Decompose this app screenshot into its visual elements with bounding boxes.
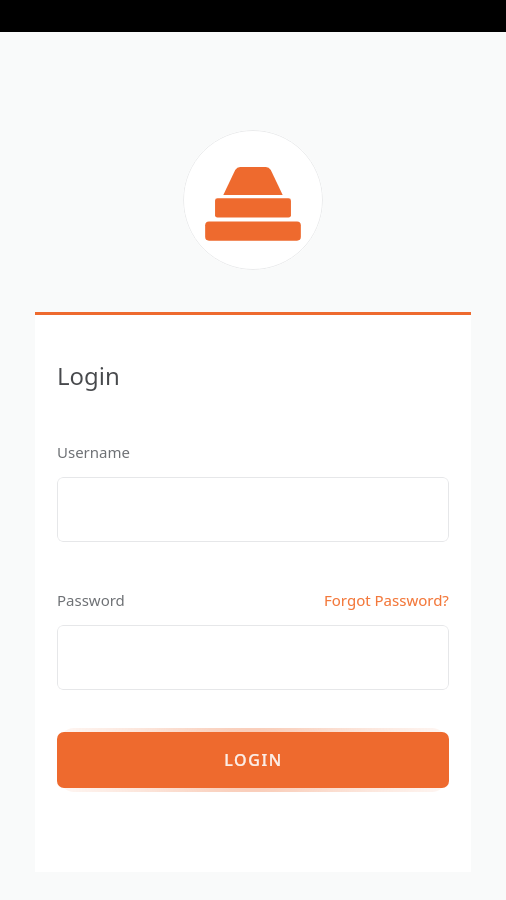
staticText: Password xyxy=(57,590,125,610)
staticText: Forgot Password? xyxy=(324,590,449,610)
button[interactable] xyxy=(57,477,449,542)
staticText: Login xyxy=(57,359,120,392)
button[interactable] xyxy=(57,625,449,690)
staticText: LOGIN xyxy=(224,749,283,771)
staticText: Username xyxy=(57,442,130,462)
button[interactable]: Forgot Password? xyxy=(324,590,449,610)
button[interactable]: Login xyxy=(57,732,449,788)
